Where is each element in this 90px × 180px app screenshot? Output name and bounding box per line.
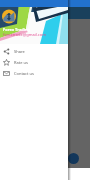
staticText: Forex Trading [3,27,31,32]
button[interactable]: Add [68,153,79,164]
staticText: Share [14,49,25,54]
staticText: Rate us [14,60,28,65]
button[interactable]: Share [0,46,68,57]
staticText: forextrade@gmail.com [3,32,46,37]
button[interactable]: Contact us [0,68,68,79]
button[interactable]: Rate us [0,57,68,68]
staticText: Contact us [14,71,34,76]
